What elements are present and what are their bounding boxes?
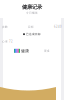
staticText: 6240 xyxy=(54,25,62,28)
staticText: 今日概览 xyxy=(26,11,38,14)
staticText: 健康 xyxy=(21,48,29,53)
staticText: 已达成目标 xyxy=(26,32,41,36)
staticText: 步数 xyxy=(2,25,8,28)
staticText: 更多 xyxy=(44,49,50,52)
staticText: 目标 xyxy=(28,25,34,28)
staticText: 健康记录 xyxy=(22,4,42,10)
staticText: 心率 72 xyxy=(2,40,13,43)
